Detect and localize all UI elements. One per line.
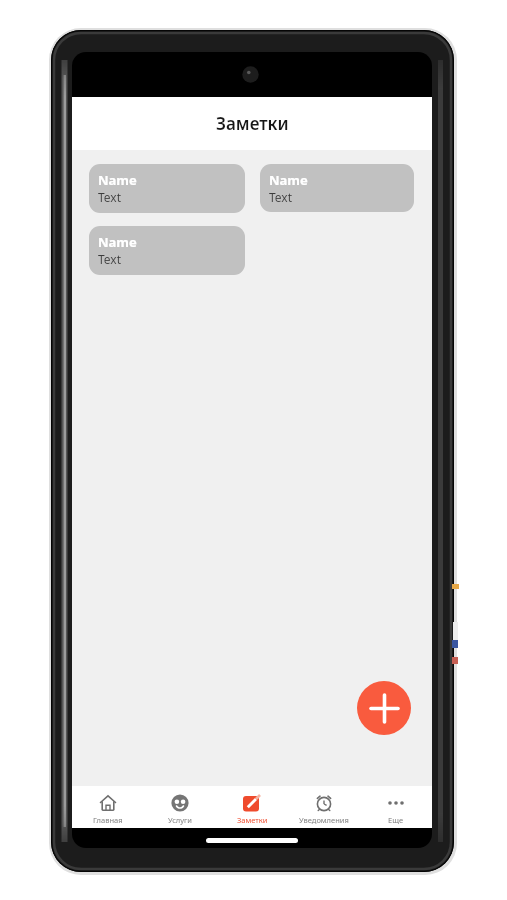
staticText: Text bbox=[98, 189, 122, 205]
staticText: Главная bbox=[93, 815, 123, 825]
button[interactable]: Еще bbox=[360, 786, 432, 828]
button[interactable]: Name bbox=[89, 164, 245, 213]
button[interactable]: Name bbox=[260, 164, 414, 212]
staticText: Услуги bbox=[168, 815, 193, 825]
staticText: Name bbox=[98, 171, 137, 189]
staticText: Заметки bbox=[237, 815, 268, 825]
staticText: Уведомления bbox=[299, 815, 349, 825]
button[interactable]: Уведомления bbox=[288, 786, 360, 828]
button[interactable]: Заметки bbox=[216, 786, 288, 828]
button[interactable]: Name bbox=[89, 226, 245, 275]
staticText: Text bbox=[98, 251, 122, 267]
staticText: Еще bbox=[388, 815, 404, 825]
button[interactable]: Услуги bbox=[144, 786, 216, 828]
button[interactable]: Главная bbox=[72, 786, 144, 828]
staticText: Name bbox=[269, 171, 308, 189]
staticText: Text bbox=[269, 189, 293, 205]
staticText: Name bbox=[98, 233, 137, 251]
staticText: Заметки bbox=[216, 112, 289, 135]
button[interactable] bbox=[357, 681, 411, 735]
